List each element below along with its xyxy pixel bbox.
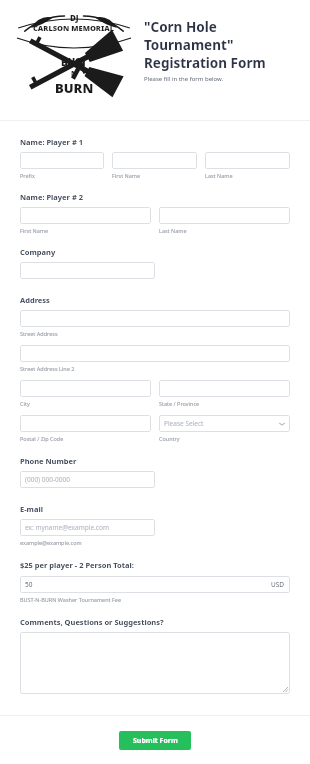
staticText: Prefix (20, 172, 104, 179)
button[interactable]: Please Select (159, 415, 290, 432)
button[interactable] (20, 262, 155, 279)
button[interactable] (20, 310, 290, 327)
staticText: CARLSON MEMORIAL (33, 23, 115, 33)
staticText: BURN (55, 79, 94, 97)
button[interactable] (159, 207, 290, 224)
button[interactable] (20, 415, 151, 432)
staticText: Please fill in the form below. (144, 75, 224, 83)
button[interactable]: 50 (20, 576, 290, 593)
staticText: First Name (112, 172, 197, 179)
button[interactable] (112, 152, 197, 169)
button[interactable] (20, 345, 290, 362)
staticText: (000) 000-0000 (25, 475, 70, 484)
staticText: Submit Form (133, 736, 178, 746)
staticText: 50 (25, 580, 33, 589)
button[interactable]: Submit Form (119, 731, 191, 750)
staticText: State / Province (159, 400, 290, 407)
staticText: Name: Player # 1 (20, 137, 83, 147)
staticText: example@example.com (20, 539, 82, 546)
staticText: Last Name (159, 227, 290, 234)
staticText: Country (159, 435, 290, 442)
staticText: Street Address Line 2 (20, 365, 75, 372)
staticText: First Name (20, 227, 151, 234)
staticText: Comments, Questions or Suggestions? (20, 617, 164, 627)
button[interactable]: (000) 000-0000 (20, 471, 155, 488)
staticText: Postal / Zip Code (20, 435, 151, 442)
button[interactable] (20, 152, 104, 169)
staticText: Address (20, 295, 50, 305)
button[interactable] (205, 152, 290, 169)
button[interactable] (159, 380, 290, 397)
staticText: ex: myname@example.com (25, 523, 109, 532)
staticText: N (71, 69, 77, 79)
staticText: Name: Player # 2 (20, 192, 83, 202)
staticText: "Corn Hole (144, 18, 217, 36)
staticText: BUST (61, 55, 87, 69)
button[interactable] (20, 632, 290, 694)
staticText: Tournament" (144, 36, 234, 54)
button[interactable]: ex: myname@example.com (20, 519, 155, 536)
staticText: Registration Form (144, 54, 266, 72)
staticText: Company (20, 247, 56, 257)
staticText: Phone Number (20, 456, 77, 466)
staticText: Please Select (164, 419, 204, 428)
button[interactable] (20, 380, 151, 397)
button[interactable] (20, 207, 151, 224)
staticText: Last Name (205, 172, 290, 179)
staticText: USD (271, 580, 285, 589)
staticText: Street Address (20, 330, 58, 337)
staticText: $25 per player - 2 Person Total: (20, 560, 134, 570)
staticText: E-mail (20, 504, 43, 514)
staticText: City (20, 400, 151, 407)
staticText: BUST-N-BURN Washer Tournament Fee (20, 596, 122, 603)
staticText: DJ (70, 12, 79, 23)
